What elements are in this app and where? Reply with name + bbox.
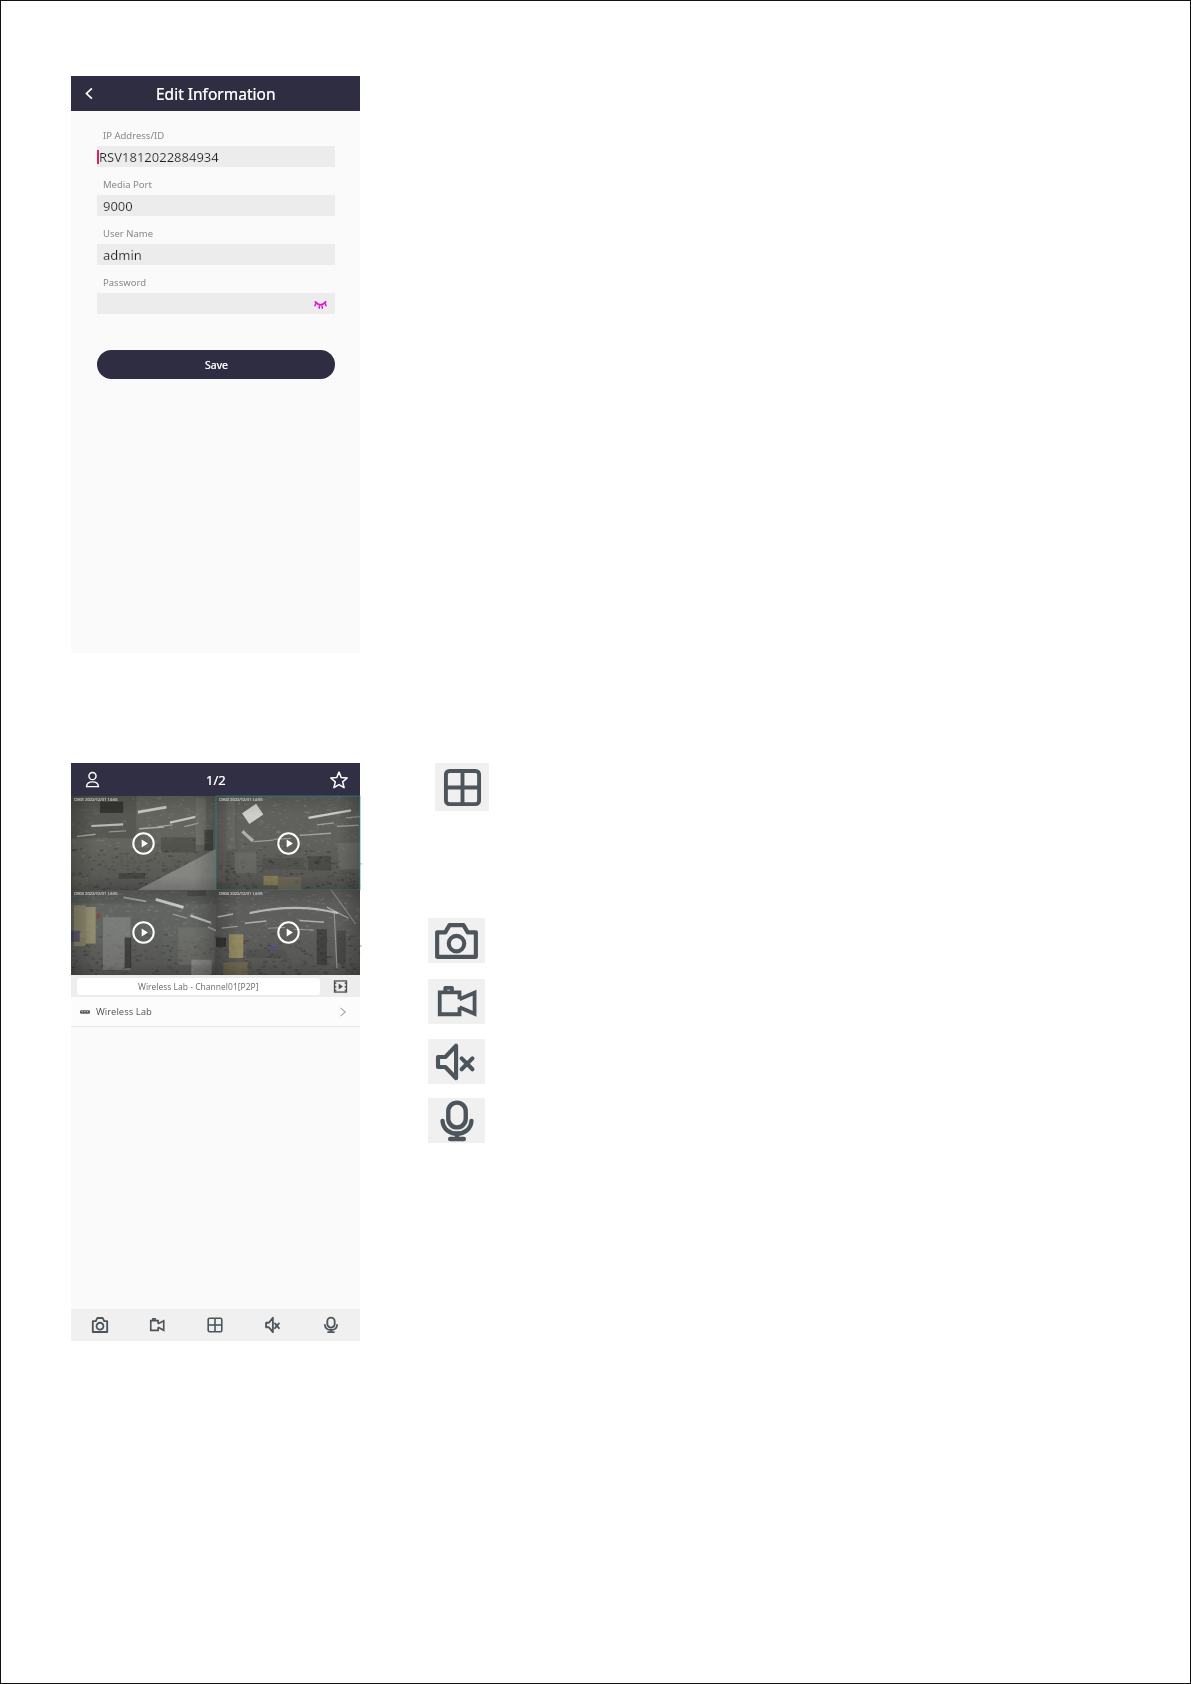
staticText: admin [103,246,142,264]
button[interactable]: Save [97,350,335,379]
button[interactable]: Play channel 1 [71,796,216,890]
button[interactable]: Record [428,979,485,1024]
staticText: CH01 2022/12/31 14:55 [74,797,118,802]
button[interactable]: Snapshot [428,918,485,963]
staticText: User Name [103,227,154,240]
button[interactable]: Play channel 4 [216,890,360,975]
staticText: Save [205,358,228,372]
button[interactable]: admin [97,244,335,265]
button[interactable]: Show password [313,296,328,311]
button[interactable]: Mute [428,1039,485,1084]
button[interactable]: Play channel 3 [71,890,216,975]
staticText: CH03 2022/12/31 14:55 [74,891,118,896]
button[interactable]: Record [128,1309,186,1341]
button[interactable]: Layout [186,1309,244,1341]
staticText: CH04 2022/12/31 14:55 [219,891,263,896]
staticText: Wireless Lab [96,1005,152,1018]
button[interactable]: Talk [302,1309,360,1341]
button[interactable]: 9000 [97,195,335,216]
button[interactable]: Wireless Lab [71,997,360,1026]
button[interactable]: Mute [244,1309,302,1341]
staticText: CH02 2022/12/31 14:55 [219,797,263,802]
staticText: 9000 [103,197,133,215]
button[interactable]: Account [84,771,101,788]
button[interactable]: Wireless Lab - Channel01[P2P] [77,978,320,995]
staticText: RSV1812022884934 [99,148,219,166]
staticText: IP Address/ID [103,129,165,142]
button[interactable]: Layout grid [435,763,489,811]
staticText: 1/2 [206,771,226,789]
button[interactable]: Back [71,76,107,111]
button[interactable]: Playback [333,979,348,994]
button[interactable]: RSV1812022884934 [97,146,335,167]
button[interactable]: Show password [97,293,335,314]
staticText: Edit Information [156,83,276,104]
button[interactable]: Play channel 2 [216,796,360,890]
button[interactable]: Microphone [428,1098,485,1143]
staticText: Media Port [103,178,152,191]
button[interactable]: Snapshot [71,1309,128,1341]
staticText: Password [103,276,146,289]
staticText: Wireless Lab - Channel01[P2P] [138,981,259,993]
button[interactable]: Favorite [330,771,348,789]
